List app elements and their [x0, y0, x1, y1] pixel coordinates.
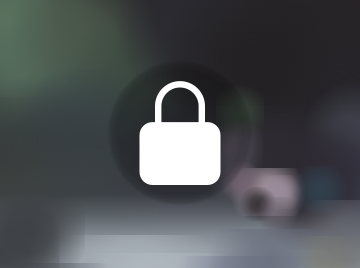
button[interactable]: Locked — [107, 60, 253, 206]
